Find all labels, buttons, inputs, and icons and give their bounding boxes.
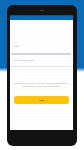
button[interactable]: Next xyxy=(14,96,69,104)
staticText: Mobile Number xyxy=(19,59,35,62)
staticText: Name xyxy=(13,45,19,48)
staticText: +91 xyxy=(13,59,17,62)
staticText: We have sent an OTP on your registered m… xyxy=(11,82,72,88)
staticText: Next xyxy=(39,99,45,102)
